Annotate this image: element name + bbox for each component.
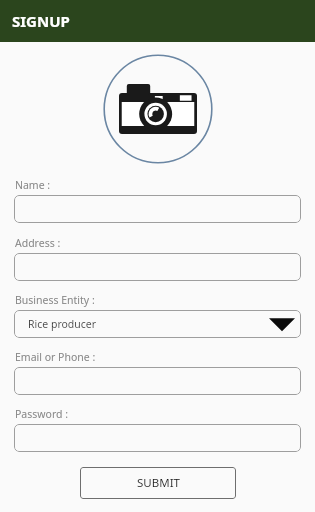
button[interactable] bbox=[14, 367, 301, 395]
staticText: Rice producer bbox=[28, 317, 97, 331]
staticText: SIGNUP bbox=[12, 11, 70, 31]
button[interactable] bbox=[14, 424, 301, 452]
staticText: Business Entity : bbox=[15, 293, 95, 307]
staticText: Name : bbox=[15, 178, 51, 192]
staticText: Address : bbox=[15, 236, 61, 250]
staticText: Email or Phone : bbox=[15, 350, 96, 364]
staticText: SUBMIT bbox=[137, 475, 180, 491]
staticText: Password : bbox=[15, 407, 69, 421]
button[interactable] bbox=[14, 253, 301, 281]
button[interactable]: SUBMIT bbox=[80, 467, 236, 499]
button[interactable] bbox=[14, 195, 301, 223]
button[interactable]: Rice producer bbox=[14, 310, 301, 338]
